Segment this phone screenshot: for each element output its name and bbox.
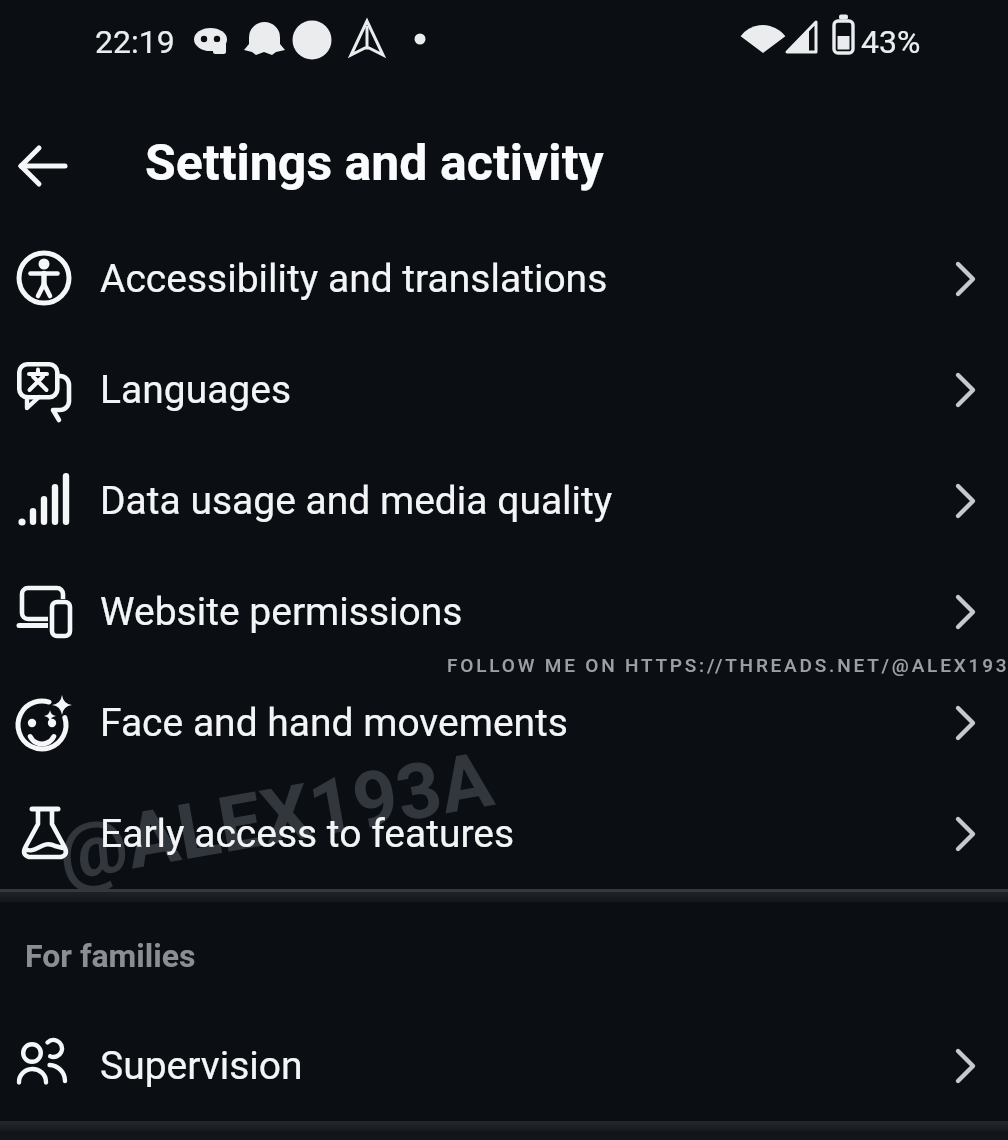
staticText: 22:19	[95, 23, 175, 61]
button[interactable]: Languages	[0, 334, 1008, 445]
button[interactable]: Website permissions	[0, 556, 1008, 667]
staticText: FOLLOW ME ON HTTPS://THREADS.NET/@ALEX19…	[447, 654, 1008, 676]
staticText: Face and hand movements	[100, 700, 955, 746]
staticText: @ALEX193A	[51, 734, 500, 899]
button[interactable]	[19, 145, 67, 187]
button[interactable]: Data usage and media quality	[0, 445, 1008, 556]
staticText: Early access to features	[100, 811, 955, 857]
button[interactable]: Early access to features	[0, 778, 1008, 889]
button[interactable]: Face and hand movements	[0, 667, 1008, 778]
staticText: Languages	[100, 367, 955, 413]
staticText: Settings and activity	[145, 134, 604, 193]
button[interactable]: Accessibility and translations	[0, 223, 1008, 334]
staticText: 43%	[861, 23, 921, 61]
staticText: Accessibility and translations	[100, 256, 955, 302]
staticText: Supervision	[100, 1043, 955, 1089]
staticText: Data usage and media quality	[100, 478, 955, 524]
staticText: For families	[25, 937, 196, 975]
button[interactable]: Supervision	[0, 1010, 1008, 1121]
staticText: Website permissions	[100, 589, 955, 635]
